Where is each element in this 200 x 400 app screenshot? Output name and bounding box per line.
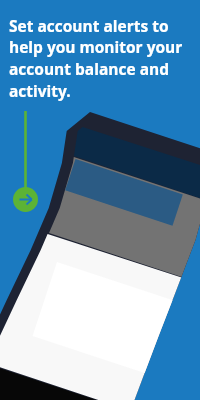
button[interactable]: Next (13, 187, 38, 212)
staticText: Set account alerts to help you monitor y… (9, 15, 200, 101)
